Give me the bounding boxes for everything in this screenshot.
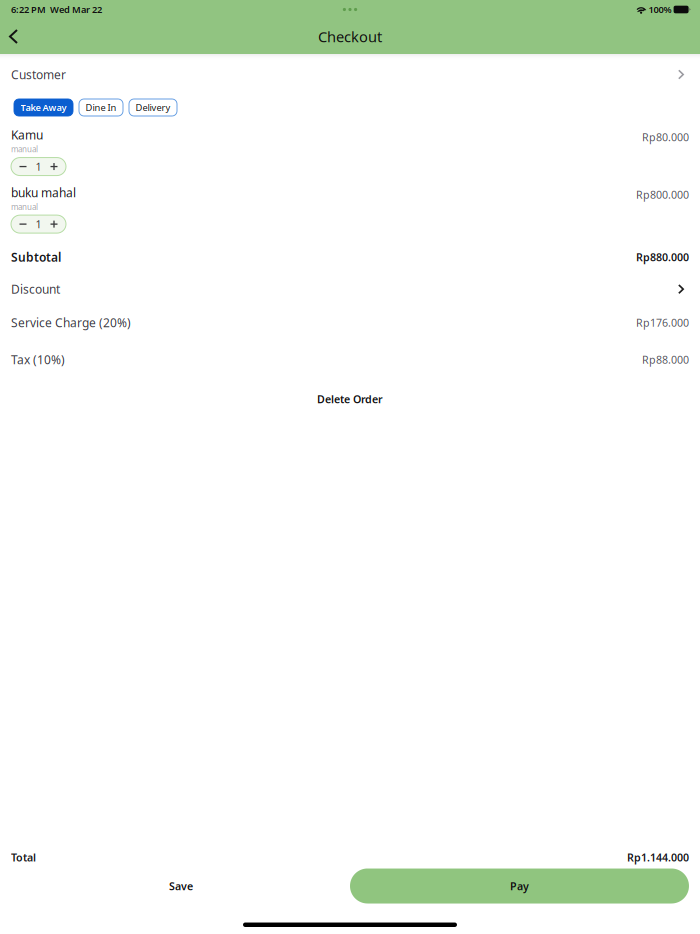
button[interactable]: Dine In: [79, 99, 123, 116]
button[interactable]: Increase quantity: [44, 216, 66, 233]
staticText: Delivery: [135, 101, 170, 114]
staticText: Subtotal: [11, 249, 61, 265]
button[interactable]: Delivery: [129, 99, 177, 116]
staticText: Rp88.000: [642, 352, 689, 367]
button[interactable]: Save: [101, 868, 261, 903]
button[interactable]: Service Charge (20%): [0, 305, 700, 340]
staticText: 6:22 PM: [11, 3, 46, 16]
staticText: manual: [11, 201, 38, 212]
staticText: Wed Mar 22: [46, 3, 102, 16]
staticText: Rp176.000: [636, 315, 689, 330]
staticText: Discount: [11, 281, 60, 297]
button[interactable]: Increase quantity: [44, 158, 66, 175]
button[interactable]: Tax (10%): [0, 340, 700, 379]
staticText: manual: [11, 144, 38, 154]
button[interactable]: Pay: [350, 868, 689, 903]
staticText: 100%: [647, 3, 674, 16]
button[interactable]: Decrease quantity: [11, 158, 32, 175]
staticText: Save: [169, 879, 193, 893]
button[interactable]: Customer: [0, 60, 700, 89]
staticText: Service Charge (20%): [11, 315, 131, 331]
staticText: Customer: [11, 66, 66, 82]
staticText: Rp880.000: [636, 250, 689, 264]
staticText: Dine In: [85, 101, 116, 114]
staticText: Rp800.000: [636, 188, 689, 202]
staticText: 1: [35, 159, 41, 174]
staticText: Tax (10%): [11, 352, 65, 368]
button[interactable]: Discount: [0, 273, 700, 305]
staticText: 1: [35, 217, 41, 231]
button[interactable]: Decrease quantity: [11, 216, 32, 233]
button[interactable]: Back: [0, 21, 29, 52]
staticText: Delete Order: [317, 392, 383, 406]
staticText: Pay: [510, 879, 529, 893]
staticText: Rp80.000: [642, 130, 689, 144]
staticText: Rp1.144.000: [627, 850, 689, 864]
staticText: Take Away: [20, 101, 66, 114]
button[interactable]: Delete Order: [0, 379, 700, 419]
button[interactable]: Take Away: [14, 99, 73, 116]
button[interactable]: Subtotal: [0, 241, 700, 273]
staticText: buku mahal: [11, 185, 76, 200]
staticText: Checkout: [318, 27, 382, 46]
staticText: Total: [11, 850, 36, 864]
staticText: Kamu: [11, 127, 43, 143]
